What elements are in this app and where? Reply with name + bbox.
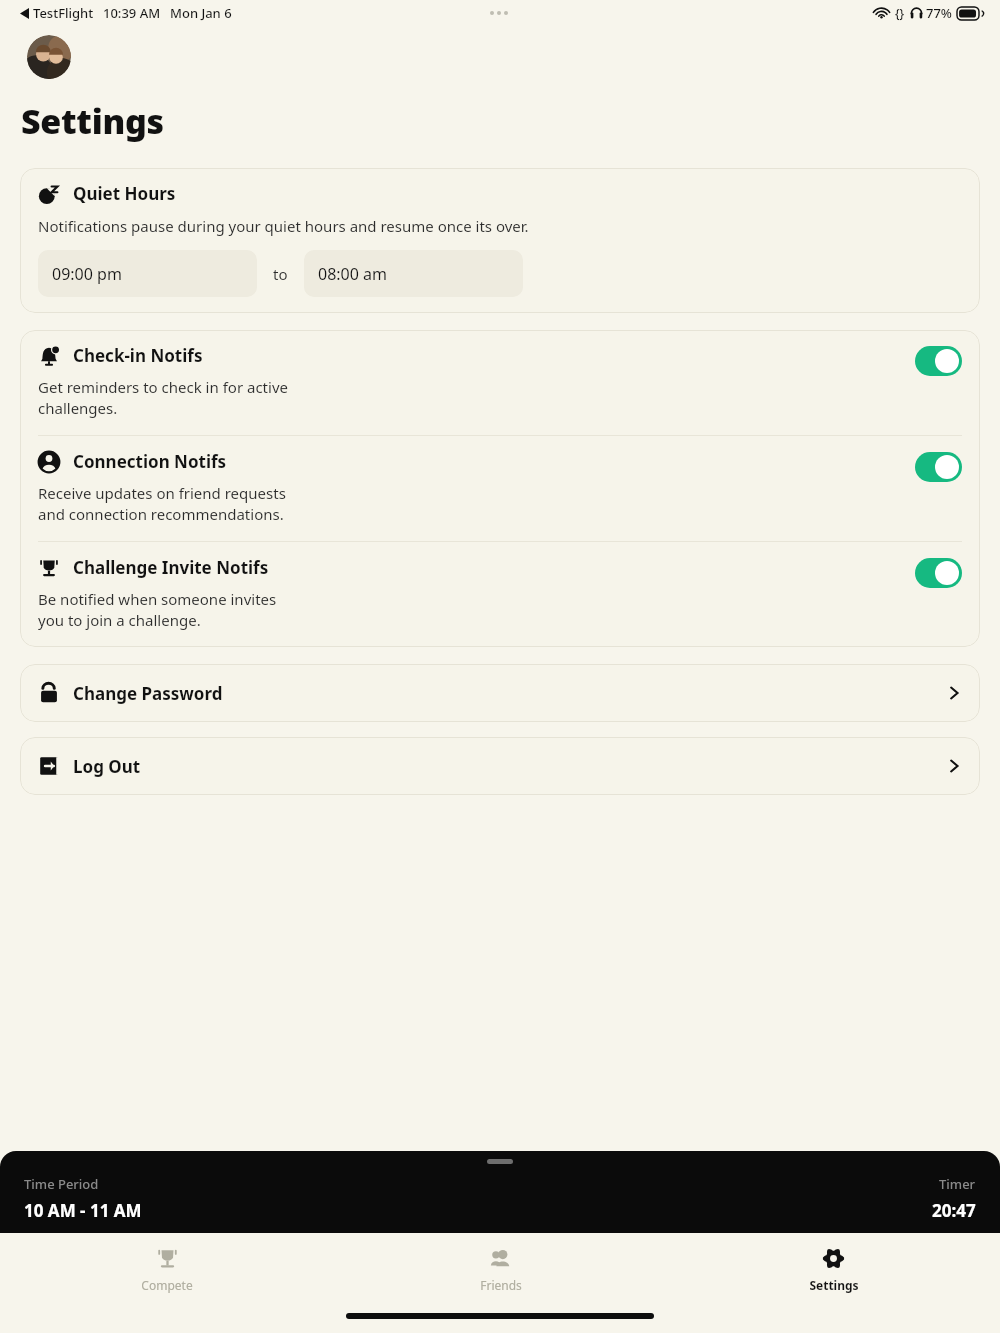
button[interactable]: 09:00 pm xyxy=(38,250,257,297)
staticText: 77% xyxy=(926,4,952,22)
staticText: Challenge Invite Notifs xyxy=(73,556,269,579)
button[interactable]: Log Out xyxy=(20,737,980,795)
button[interactable]: Change Password xyxy=(20,664,980,722)
button[interactable]: Check-in Notifs xyxy=(20,330,980,435)
staticText: Time Period xyxy=(24,1175,99,1193)
staticText: Mon Jan 6 xyxy=(170,4,232,22)
staticText: 08:00 am xyxy=(318,263,387,285)
staticText: 20:47 xyxy=(932,1199,976,1222)
staticText: Settings xyxy=(21,98,164,144)
staticText: to xyxy=(273,264,288,284)
staticText: Friends xyxy=(480,1277,522,1293)
staticText: 09:00 pm xyxy=(52,263,122,285)
button[interactable]: Connection Notifs xyxy=(20,436,980,541)
button[interactable]: Profile xyxy=(27,35,71,79)
button[interactable]: Settings xyxy=(667,1233,1000,1307)
staticText: {} xyxy=(895,5,905,21)
button[interactable]: Compete xyxy=(0,1233,334,1307)
staticText: Change Password xyxy=(73,682,223,705)
button[interactable]: Quiet Hours xyxy=(20,168,980,313)
staticText: 10 AM - 11 AM xyxy=(24,1199,142,1222)
button[interactable]: Toggle xyxy=(915,558,962,588)
staticText: Compete xyxy=(141,1277,193,1293)
staticText: TestFlight xyxy=(33,4,94,22)
staticText: Log Out xyxy=(73,755,141,778)
staticText: Receive updates on friend requests and c… xyxy=(38,483,286,525)
button[interactable]: 08:00 am xyxy=(304,250,523,297)
staticText: Be notified when someone invites you to … xyxy=(38,589,277,631)
staticText: Settings xyxy=(809,1277,859,1293)
staticText: Check-in Notifs xyxy=(73,344,203,367)
button[interactable]: Toggle xyxy=(915,346,962,376)
button[interactable]: Time Period xyxy=(0,1151,1000,1233)
staticText: Connection Notifs xyxy=(73,450,227,473)
button[interactable]: Friends xyxy=(334,1233,667,1307)
button[interactable]: Toggle xyxy=(915,452,962,482)
button[interactable]: Challenge Invite Notifs xyxy=(20,542,980,647)
staticText: 10:39 AM xyxy=(103,4,161,22)
staticText: Notifications pause during your quiet ho… xyxy=(38,216,529,236)
staticText: Timer xyxy=(939,1175,976,1193)
staticText: Quiet Hours xyxy=(73,182,176,205)
staticText: Get reminders to check in for active cha… xyxy=(38,377,288,419)
